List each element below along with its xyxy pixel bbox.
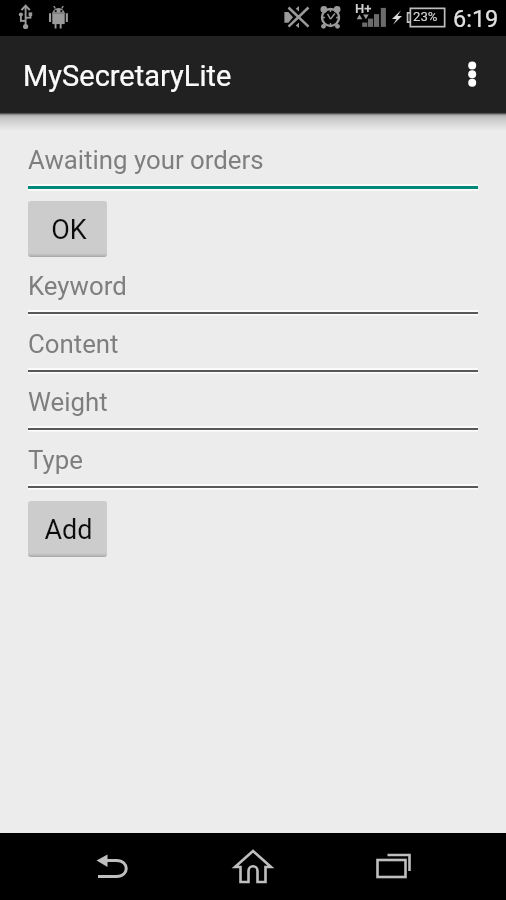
button[interactable]: Add [28, 501, 107, 557]
button[interactable]: Back [67, 833, 159, 900]
button[interactable]: Home [207, 833, 299, 900]
button[interactable]: More options [454, 36, 506, 112]
staticText: H+ [355, 1, 372, 16]
staticText: 6:19 [453, 5, 499, 33]
staticText: Awaiting your orders [28, 145, 264, 175]
button[interactable]: Recent apps [347, 833, 439, 900]
staticText: Keyword [28, 271, 127, 301]
staticText: OK [51, 214, 87, 246]
staticText: 23% [413, 9, 438, 24]
staticText: Content [28, 329, 119, 359]
button[interactable]: Content [0, 329, 506, 376]
staticText: MySecretaryLite [23, 59, 232, 93]
button[interactable]: Weight [0, 387, 506, 434]
button[interactable]: Keyword [0, 271, 506, 318]
staticText: Add [44, 514, 93, 546]
button[interactable]: OK [28, 201, 107, 257]
button[interactable]: Awaiting your orders [0, 145, 506, 192]
staticText: Type [28, 445, 83, 475]
staticText: Weight [28, 387, 108, 417]
button[interactable]: Type [0, 445, 506, 492]
